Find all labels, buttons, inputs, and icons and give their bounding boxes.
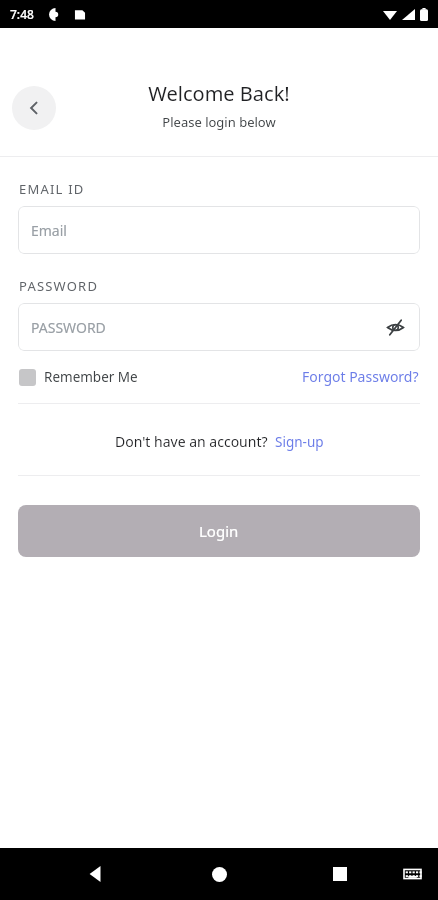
staticText: PASSWORD [31, 318, 106, 337]
button[interactable]: Back [12, 86, 56, 130]
staticText: Remember Me [44, 368, 138, 386]
staticText: Login [199, 521, 239, 541]
staticText: Email [31, 221, 67, 240]
staticText: PASSWORD [19, 277, 99, 295]
button[interactable]: Forgot Password? [302, 367, 419, 386]
button[interactable]: Toggle password visibility [382, 314, 408, 340]
button[interactable]: Back [76, 854, 116, 894]
button[interactable]: Home [198, 853, 240, 895]
staticText: EMAIL ID [19, 180, 85, 198]
staticText: Please login below [162, 113, 276, 131]
button[interactable]: PASSWORD [18, 303, 420, 351]
staticText: Welcome Back! [148, 80, 290, 107]
button[interactable]: Login [18, 505, 420, 557]
button[interactable]: Keyboard [394, 856, 430, 892]
button[interactable]: Recent apps [320, 854, 360, 894]
staticText: 7:48 [10, 6, 34, 22]
button[interactable]: Sign-up [275, 433, 324, 451]
button[interactable]: Email [18, 206, 420, 254]
button[interactable]: Remember Me [19, 368, 138, 386]
staticText: Sign-up [275, 433, 324, 451]
staticText: Don't have an account? [115, 432, 268, 451]
staticText: Forgot Password? [302, 367, 419, 386]
